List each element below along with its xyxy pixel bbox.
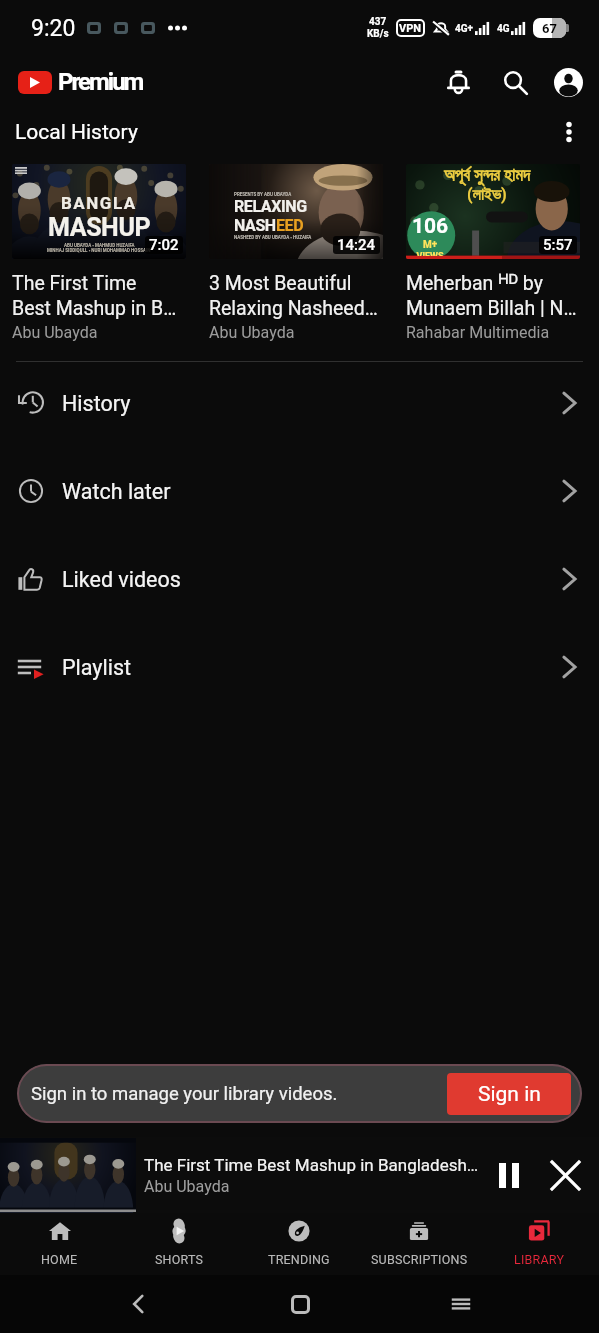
button[interactable]: Premium (18, 68, 143, 96)
button[interactable]: SUBSCRIPTIONS (359, 1213, 479, 1275)
button[interactable]: SHORTS (119, 1213, 239, 1275)
staticText: 9:20 (31, 15, 76, 42)
button[interactable]: LIBRARY (479, 1213, 599, 1275)
button[interactable]: PRESENTS BY ABU UBAYDA (209, 164, 383, 342)
staticText: Sign in to manage your library videos. (31, 1083, 338, 1105)
button[interactable]: Close (536, 1146, 594, 1204)
staticText: EED (276, 216, 304, 235)
staticText: 437 (369, 16, 387, 28)
button[interactable]: More options (547, 110, 591, 154)
staticText: 14:24 (337, 236, 376, 254)
staticText: 67 (542, 21, 557, 36)
staticText: MINHAJ SIDDIQULL ⬩ NURI MOHAMMAD HOSSAIN (47, 248, 151, 253)
staticText: (লাইভ) (467, 185, 507, 204)
button[interactable]: Notifications (435, 59, 481, 105)
button[interactable]: Recents (438, 1281, 484, 1327)
button[interactable]: BANGLA (12, 164, 186, 342)
button[interactable]: অপূর্ব সুন্দর হামদ (406, 164, 580, 342)
button[interactable]: Search (492, 59, 538, 105)
button[interactable]: Home (277, 1281, 323, 1327)
button[interactable]: TRENDING (239, 1213, 359, 1275)
staticText: VPN (399, 22, 422, 35)
button[interactable]: The First Time Best Mashup in Bangladesh… (0, 1137, 599, 1213)
button[interactable]: Sign in (447, 1073, 571, 1115)
staticText: SHORTS (155, 1252, 204, 1267)
staticText: Premium (58, 68, 143, 96)
staticText: 4G+ (455, 23, 474, 35)
staticText: 3 Most Beautiful Relaxing Nasheed… (209, 272, 378, 320)
staticText: BANGLA (61, 193, 137, 213)
staticText: MASHUP (48, 213, 151, 242)
staticText: PRESENTS BY ABU UBAYDA (234, 192, 292, 197)
button[interactable]: HOME (0, 1213, 119, 1275)
staticText: M+ (406, 239, 454, 251)
staticText: Abu Ubayda (144, 1177, 230, 1196)
staticText: LIBRARY (514, 1252, 565, 1267)
button[interactable]: Back (116, 1281, 162, 1327)
button[interactable]: Watch later (0, 450, 599, 538)
staticText: Sign in (478, 1082, 541, 1107)
staticText: 5:57 (543, 236, 573, 254)
staticText: 4G (497, 23, 510, 35)
staticText: NASH (234, 216, 276, 235)
staticText: Playlist (62, 655, 132, 680)
staticText: TRENDING (268, 1252, 330, 1267)
staticText: KB/s (367, 28, 389, 40)
staticText: The First Time Best Mashup in Bangladesh… (144, 1155, 482, 1175)
staticText: Abu Ubayda (12, 323, 98, 342)
staticText: HOME (41, 1252, 78, 1267)
staticText: Rahabar Multimedia (406, 323, 550, 342)
button[interactable]: Playlist (0, 626, 599, 714)
staticText: History (62, 391, 131, 416)
staticText: NASHEED BY ABU UBAYDA ⬩ HUZAIFA (234, 235, 312, 240)
button[interactable]: History (0, 362, 599, 450)
staticText: ABU UBAYDA ⬩ MAHMUD HUZAIFA (64, 243, 135, 248)
staticText: VIEWS (406, 251, 454, 259)
staticText: RELAXING (234, 197, 307, 216)
staticText: Watch later (62, 479, 171, 504)
staticText: SUBSCRIPTIONS (371, 1252, 468, 1267)
staticText: Meherban ᴴᴰ by Munaem Billah | N… (406, 272, 577, 320)
staticText: অপূর্ব সুন্দর হামদ (444, 165, 530, 185)
staticText: 7:02 (149, 236, 179, 254)
staticText: 106 (406, 214, 454, 239)
staticText: Abu Ubayda (209, 323, 295, 342)
staticText: Local History (15, 120, 138, 145)
staticText: Liked videos (62, 567, 181, 592)
button[interactable]: Pause (482, 1148, 536, 1202)
button[interactable]: Liked videos (0, 538, 599, 626)
staticText: The First Time Best Mashup in B… (12, 272, 177, 320)
button[interactable]: Account (545, 59, 591, 105)
